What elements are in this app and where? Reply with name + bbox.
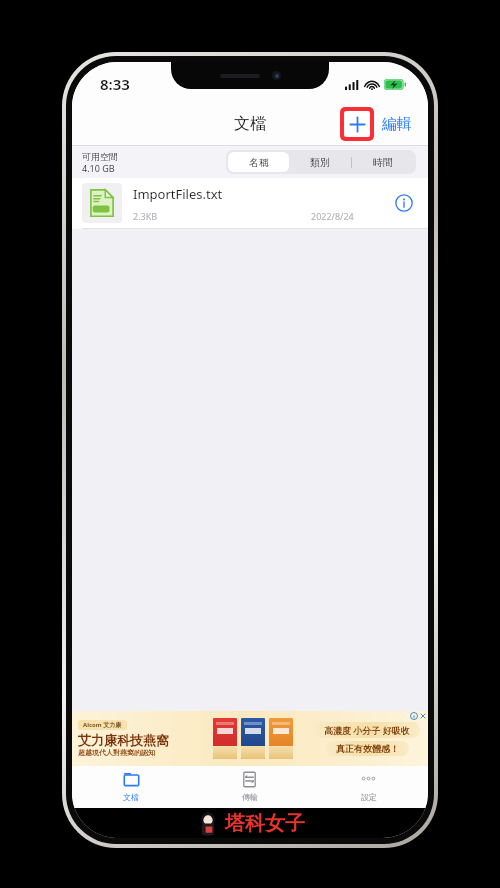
staticText: 名稱 — [249, 156, 269, 169]
staticText: 8:33 — [100, 74, 130, 94]
staticText: 文檔 — [123, 792, 139, 802]
button[interactable]: 類別 — [289, 152, 351, 172]
staticText: 真正有效體感！ — [336, 743, 399, 754]
button[interactable]: ImportFiles.txt — [72, 178, 428, 228]
staticText: 塔科女子 — [225, 811, 305, 836]
staticText: 設定 — [361, 792, 377, 802]
staticText: 2022/8/24 — [311, 210, 354, 222]
button[interactable]: 時間 — [352, 152, 414, 172]
staticText: 超越現代人對燕窩的認知 — [78, 748, 155, 757]
staticText: 艾力康科技燕窩 — [78, 732, 169, 748]
staticText: 4.10 GB — [82, 162, 115, 174]
staticText: 時間 — [373, 156, 393, 169]
staticText: 2.3KB — [133, 210, 158, 222]
button[interactable]: Add — [340, 107, 374, 141]
staticText: ImportFiles.txt — [133, 185, 223, 203]
button[interactable]: 文檔 — [72, 766, 190, 808]
staticText: 可用空間 — [82, 151, 118, 162]
button[interactable]: Info — [390, 189, 418, 217]
staticText: 編輯 — [382, 115, 412, 134]
button[interactable]: Advertisement — [72, 711, 428, 766]
button[interactable]: 編輯 — [380, 109, 414, 140]
button[interactable]: 傳輸 — [190, 766, 309, 808]
staticText: 文檔 — [234, 114, 266, 134]
button[interactable]: 名稱 — [228, 152, 289, 172]
staticText: 高濃度 小分子 好吸收 — [324, 724, 410, 736]
button[interactable]: 設定 — [309, 766, 428, 808]
staticText: Alcom 艾力康 — [83, 721, 122, 729]
staticText: 傳輸 — [242, 792, 258, 802]
staticText: 類別 — [310, 156, 330, 169]
